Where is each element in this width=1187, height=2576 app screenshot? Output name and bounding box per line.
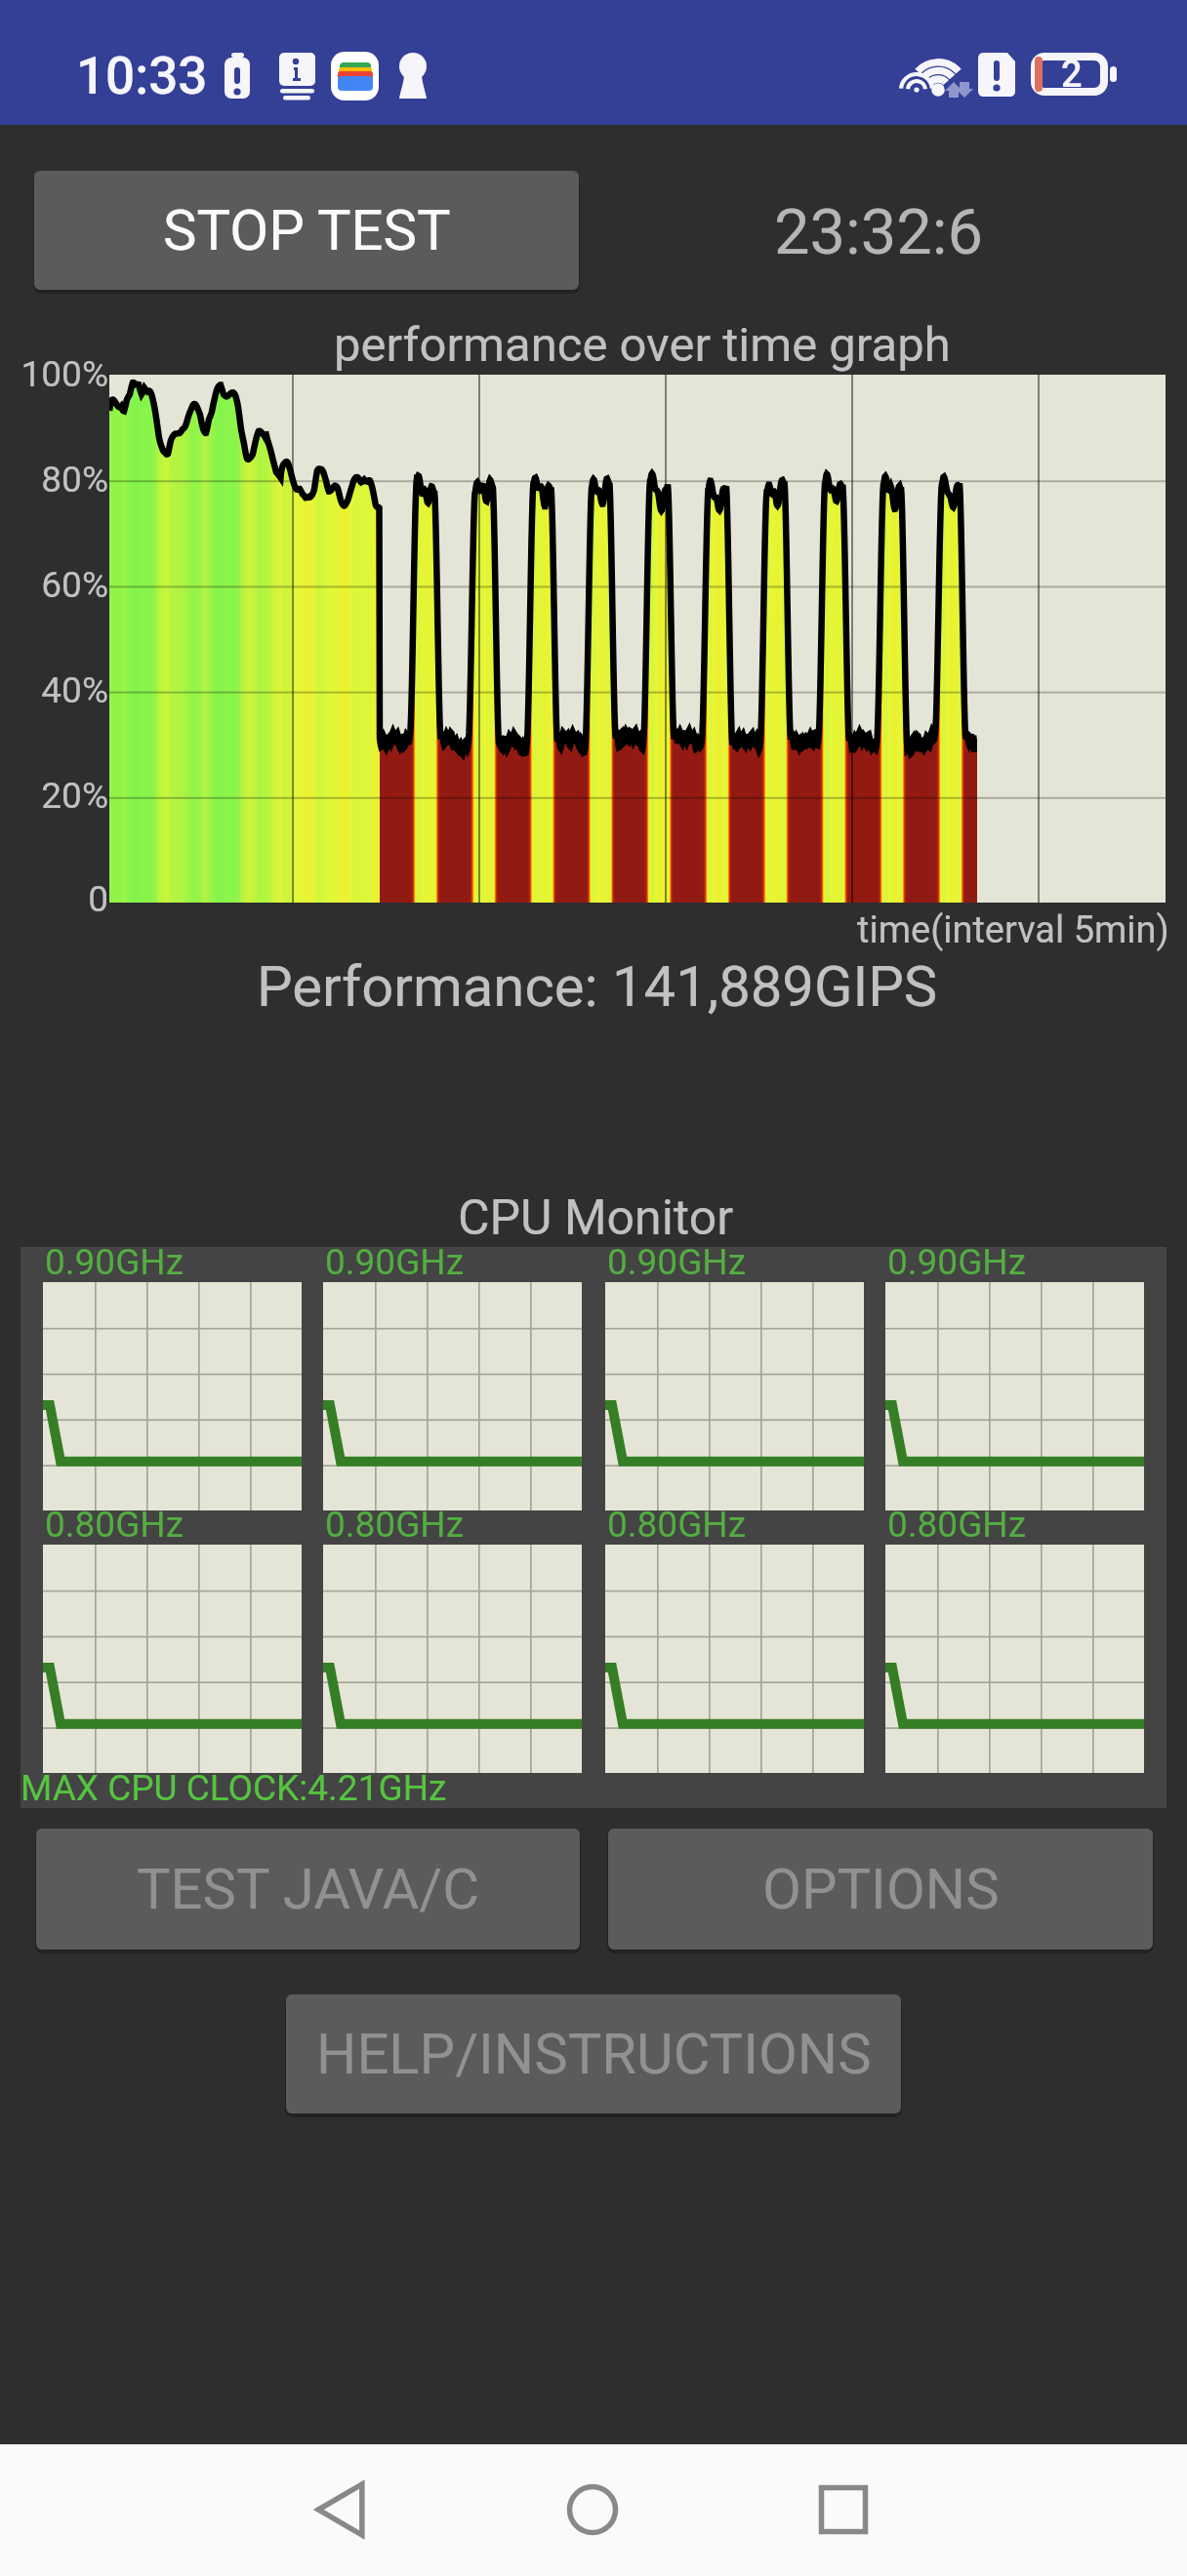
staticText: OPTIONS	[762, 1856, 1000, 1922]
button[interactable]: Recents	[785, 2451, 902, 2568]
staticText: 2	[1061, 53, 1083, 96]
button[interactable]: Back	[284, 2451, 401, 2568]
staticText: TEST JAVA/C	[137, 1856, 479, 1922]
staticText: 0.90GHz	[887, 1241, 1027, 1283]
staticText: HELP/INSTRUCTIONS	[316, 2021, 872, 2087]
staticText: 0.80GHz	[887, 1504, 1027, 1546]
staticText: 40%	[41, 669, 108, 711]
staticText: 0.90GHz	[325, 1241, 465, 1283]
staticText: STOP TEST	[163, 197, 451, 263]
staticText: 80%	[41, 459, 108, 501]
button[interactable]: Home	[534, 2451, 651, 2568]
staticText: performance over time graph	[334, 317, 951, 373]
staticText: 0.90GHz	[45, 1241, 184, 1283]
staticText: 10:33	[76, 46, 208, 106]
staticText: 0.80GHz	[607, 1504, 747, 1546]
staticText: Performance: 141,889GIPS	[257, 953, 938, 1020]
button[interactable]: STOP TEST	[34, 171, 579, 290]
staticText: time(interval 5min)	[857, 908, 1169, 952]
staticText: 23:32:6	[774, 195, 984, 269]
staticText: MAX CPU CLOCK:4.21GHz	[20, 1767, 447, 1809]
staticText: 0.80GHz	[45, 1504, 184, 1546]
staticText: 100%	[20, 353, 108, 395]
staticText: 0.90GHz	[607, 1241, 747, 1283]
button[interactable]: HELP/INSTRUCTIONS	[286, 1994, 901, 2113]
staticText: 60%	[41, 564, 108, 606]
staticText: CPU Monitor	[458, 1189, 734, 1247]
button[interactable]: TEST JAVA/C	[36, 1829, 580, 1950]
staticText: 20%	[41, 775, 108, 817]
staticText: 0	[88, 878, 108, 920]
button[interactable]: OPTIONS	[608, 1829, 1153, 1950]
staticText: 0.80GHz	[325, 1504, 465, 1546]
